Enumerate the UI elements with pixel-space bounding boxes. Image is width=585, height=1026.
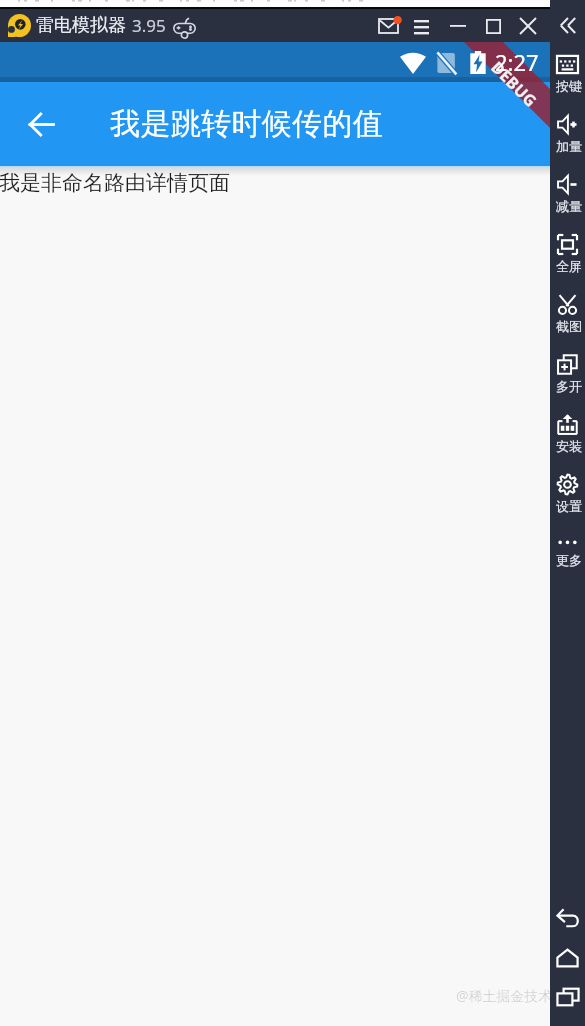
staticText: 按键 bbox=[556, 78, 582, 94]
staticText: 我是跳转时候传的值 bbox=[110, 105, 384, 143]
button[interactable]: Menu bbox=[405, 10, 437, 42]
button[interactable]: Home bbox=[550, 944, 585, 972]
button[interactable]: 更多 bbox=[550, 528, 585, 588]
staticText: 加量 bbox=[556, 138, 582, 154]
button[interactable]: Minimize bbox=[442, 10, 474, 42]
button[interactable]: 全屏 bbox=[550, 228, 585, 288]
staticText: 截图 bbox=[556, 318, 582, 334]
button[interactable]: Close bbox=[512, 10, 544, 42]
staticText: 3.95 bbox=[132, 14, 166, 37]
button[interactable]: 多开 bbox=[550, 348, 585, 408]
staticText: 全屏 bbox=[556, 258, 582, 274]
staticText: 我是非命名路由详情页面 bbox=[0, 170, 230, 196]
staticText: 更多 bbox=[556, 552, 582, 568]
button[interactable]: 按键 bbox=[550, 48, 585, 108]
button[interactable]: Recents bbox=[550, 983, 585, 1011]
staticText: 2:27 bbox=[495, 47, 539, 77]
staticText: 雷电模拟器 bbox=[36, 14, 126, 37]
button[interactable]: Messages bbox=[372, 10, 404, 42]
staticText: 多开 bbox=[556, 378, 582, 394]
button[interactable]: Maximize bbox=[477, 10, 509, 42]
staticText: 减量 bbox=[556, 198, 582, 214]
staticText: @稀土掘金技术社区 bbox=[456, 986, 581, 1005]
button[interactable]: 安装 bbox=[550, 408, 585, 468]
button[interactable]: 减量 bbox=[550, 168, 585, 228]
staticText: 安装 bbox=[556, 438, 582, 454]
button[interactable]: 截图 bbox=[550, 288, 585, 348]
button[interactable]: Back bbox=[550, 903, 585, 931]
button[interactable]: 设置 bbox=[550, 468, 585, 528]
button[interactable]: Back bbox=[17, 100, 65, 148]
staticText: DEBUG bbox=[486, 56, 542, 112]
button[interactable]: Collapse sidebar bbox=[555, 12, 581, 38]
button[interactable]: 加量 bbox=[550, 108, 585, 168]
staticText: 设置 bbox=[556, 498, 582, 514]
